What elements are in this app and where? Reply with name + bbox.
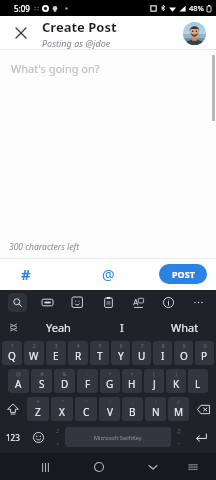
button[interactable]: L — [188, 369, 208, 393]
staticText: ' — [85, 398, 87, 405]
button[interactable]: 9 — [174, 341, 193, 365]
button[interactable]: ; — [122, 397, 143, 421]
staticText: W — [29, 349, 39, 363]
button[interactable]: Emoji — [26, 423, 50, 451]
button[interactable]: 4 — [68, 341, 88, 365]
staticText: : — [109, 398, 111, 405]
staticText: Microsoft SwiftKey — [94, 434, 142, 441]
staticText: L — [195, 377, 201, 391]
staticText: - — [87, 370, 89, 377]
staticText: # — [40, 370, 44, 377]
button[interactable]: Add hashtag — [15, 263, 37, 285]
staticText: 5 — [98, 342, 102, 349]
button[interactable]: 8 — [153, 341, 172, 365]
button[interactable]: ♫ — [171, 423, 186, 451]
staticText: I — [120, 320, 124, 335]
button[interactable]: More — [189, 293, 208, 312]
staticText: 9 — [182, 342, 186, 349]
staticText: # — [21, 264, 31, 284]
staticText: ♪ — [56, 427, 60, 434]
button[interactable]: I — [90, 315, 153, 339]
button[interactable]: ) — [166, 369, 186, 393]
button[interactable]: ' — [75, 397, 97, 421]
staticText: E — [53, 349, 59, 363]
staticText: 123 — [6, 432, 20, 443]
staticText: + — [108, 370, 112, 377]
staticText: Y — [118, 349, 124, 363]
staticText: " — [61, 398, 64, 405]
button[interactable]: Profile — [183, 22, 206, 45]
button[interactable]: = — [122, 369, 142, 393]
staticText: 8 — [161, 342, 165, 349]
staticText: S — [39, 377, 45, 391]
staticText: What — [171, 320, 199, 335]
staticText: H — [128, 377, 136, 391]
staticText: 2 — [32, 342, 36, 349]
staticText: O — [180, 349, 188, 363]
staticText: , — [57, 437, 59, 447]
button[interactable]: 6 — [111, 341, 130, 365]
button[interactable]: Info — [159, 293, 178, 312]
button[interactable]: 0 — [195, 341, 214, 365]
button[interactable]: ♪ — [50, 423, 65, 451]
button[interactable]: Keyboard layout — [180, 454, 206, 480]
button[interactable]: - — [77, 369, 98, 393]
button[interactable]: Recents — [32, 454, 58, 480]
button[interactable]: @ — [8, 369, 29, 393]
staticText: POST — [172, 268, 195, 280]
staticText: B — [129, 405, 136, 419]
staticText: ! — [155, 398, 157, 405]
button[interactable]: Backspace — [190, 395, 216, 423]
button[interactable]: Clipboard — [99, 293, 118, 312]
button[interactable]: ! — [145, 397, 166, 421]
button[interactable]: 123 — [0, 423, 26, 451]
button[interactable]: " — [51, 397, 73, 421]
staticText: 6 — [119, 342, 123, 349]
button[interactable]: ( — [144, 369, 164, 393]
button[interactable]: GIF — [38, 293, 57, 312]
staticText: D — [61, 377, 69, 391]
button[interactable]: * — [27, 397, 49, 421]
staticText: & — [62, 370, 67, 377]
button[interactable]: 5 — [90, 341, 109, 365]
button[interactable]: Close — [10, 22, 32, 44]
staticText: U — [138, 349, 146, 363]
button[interactable]: Enter — [186, 423, 216, 451]
button[interactable]: Hide keyboard — [140, 454, 166, 480]
button[interactable]: Translate — [129, 293, 148, 312]
button[interactable]: Home — [86, 454, 112, 480]
staticText: Yeah — [46, 320, 71, 335]
button[interactable]: 2 — [24, 341, 44, 365]
button[interactable]: : — [99, 397, 120, 421]
button[interactable]: Expand suggestions — [0, 315, 26, 339]
button[interactable]: Yeah — [26, 315, 90, 339]
staticText: C — [83, 405, 90, 419]
button[interactable]: + — [100, 369, 120, 393]
staticText: What's going on? — [11, 61, 100, 76]
button[interactable]: POST — [159, 264, 207, 284]
staticText: @ — [102, 265, 115, 284]
staticText: G — [106, 377, 114, 391]
staticText: R — [75, 349, 82, 363]
staticText: T — [97, 349, 103, 363]
button[interactable]: & — [54, 369, 75, 393]
staticText: I — [161, 349, 165, 363]
button[interactable]: # — [31, 369, 52, 393]
staticText: Create Post — [42, 18, 117, 36]
staticText: . — [178, 437, 180, 447]
button[interactable]: 7 — [132, 341, 151, 365]
button[interactable]: Mention someone — [97, 263, 119, 285]
staticText: 1 — [10, 342, 14, 349]
button[interactable]: Shift — [0, 395, 26, 423]
button[interactable]: Search — [8, 293, 27, 312]
button[interactable]: 1 — [2, 341, 22, 365]
staticText: J — [153, 377, 156, 391]
button[interactable]: What — [153, 315, 216, 339]
button[interactable]: Microsoft SwiftKey — [65, 427, 171, 447]
staticText: X — [59, 405, 65, 419]
button[interactable]: / — [168, 397, 189, 421]
staticText: M — [174, 405, 184, 419]
staticText: 3 — [54, 342, 58, 349]
button[interactable]: Stickers — [68, 293, 87, 312]
button[interactable]: 3 — [46, 341, 66, 365]
